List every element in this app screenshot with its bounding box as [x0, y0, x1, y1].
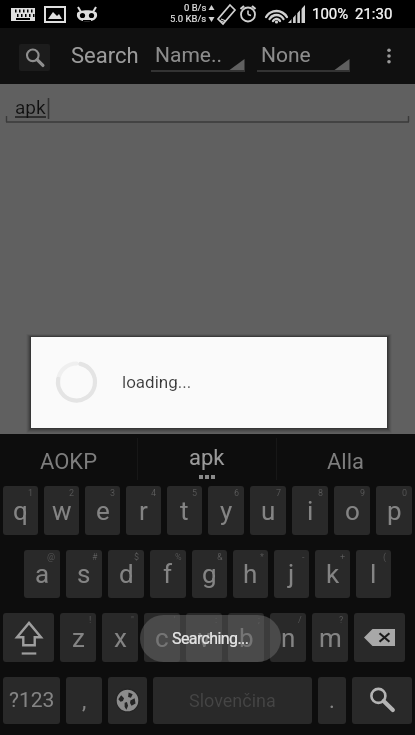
staticText: ?	[339, 615, 344, 626]
staticText: 2	[69, 488, 75, 499]
staticText: t	[180, 496, 189, 526]
staticText: i	[307, 496, 314, 526]
button[interactable]: z	[60, 613, 96, 662]
staticText: z	[72, 623, 85, 653]
staticText: 5	[192, 488, 198, 499]
staticText: 0 B/s	[184, 2, 207, 13]
staticText: loading...	[122, 372, 192, 392]
staticText: l	[370, 559, 377, 589]
staticText: b	[239, 623, 254, 653]
button[interactable]: More options	[369, 36, 409, 76]
button[interactable]: Search	[19, 44, 50, 71]
button[interactable]: Slovenčina	[153, 677, 312, 724]
button[interactable]: k	[315, 550, 350, 598]
button[interactable]: a	[24, 550, 60, 598]
staticText: @	[47, 552, 56, 563]
staticText: 4	[151, 488, 157, 499]
staticText: r	[139, 496, 148, 526]
staticText: *	[260, 552, 264, 563]
staticText: ,	[82, 688, 87, 714]
staticText: c	[155, 623, 169, 653]
staticText: !	[89, 615, 92, 626]
button[interactable]: x	[102, 613, 138, 662]
button[interactable]: m	[312, 613, 348, 662]
staticText: %	[175, 552, 182, 563]
staticText: -	[302, 552, 305, 563]
staticText: ?123	[9, 688, 55, 713]
button[interactable]: Delete	[354, 613, 405, 662]
staticText: g	[202, 559, 217, 589]
button[interactable]: w	[44, 486, 79, 535]
button[interactable]: AOKP	[0, 434, 137, 484]
button[interactable]: u	[250, 486, 286, 535]
button[interactable]: Change language	[108, 677, 147, 724]
staticText: o	[345, 496, 360, 526]
button[interactable]: .	[318, 677, 346, 724]
staticText: apk	[15, 96, 46, 118]
staticText: (	[383, 552, 387, 563]
button[interactable]: ?123	[3, 677, 60, 724]
staticText: e	[96, 496, 110, 526]
staticText: "	[131, 615, 134, 626]
staticText: 5.0 KB/s	[170, 13, 207, 24]
button[interactable]: s	[66, 550, 102, 598]
button[interactable]: Search	[352, 677, 412, 724]
staticText: .	[329, 688, 335, 714]
button[interactable]: f	[150, 550, 186, 598]
button[interactable]: p	[376, 486, 412, 535]
staticText: w	[52, 496, 72, 526]
button[interactable]: h	[233, 550, 268, 598]
staticText: 8	[318, 488, 324, 499]
button[interactable]: Shift	[3, 613, 54, 662]
staticText: None	[261, 43, 311, 68]
staticText: 6	[234, 488, 240, 499]
staticText: Alla	[327, 449, 365, 475]
staticText: apk	[189, 445, 225, 471]
button[interactable]: apk	[138, 434, 276, 484]
staticText: x	[114, 623, 127, 653]
staticText: +	[340, 552, 346, 563]
staticText: $	[134, 552, 140, 563]
staticText: #	[92, 552, 98, 563]
staticText: ;	[258, 615, 260, 626]
staticText: Search	[71, 43, 139, 69]
staticText: y	[220, 496, 233, 526]
staticText: /	[298, 615, 302, 626]
button[interactable]: j	[274, 550, 309, 598]
staticText: s	[77, 559, 91, 589]
staticText: j	[288, 559, 295, 589]
staticText: a	[35, 559, 50, 589]
button[interactable]: y	[208, 486, 244, 535]
staticText: Name..	[155, 43, 223, 68]
staticText: f	[163, 559, 173, 589]
staticText: v	[198, 623, 211, 653]
staticText: q	[13, 496, 28, 526]
button[interactable]: Name..	[151, 37, 245, 73]
staticText: m	[319, 623, 342, 653]
staticText: Slovenčina	[189, 690, 276, 711]
button[interactable]: q	[3, 486, 38, 535]
button[interactable]: o	[334, 486, 370, 535]
button[interactable]: Alla	[277, 434, 415, 484]
staticText: 21:30	[355, 5, 393, 23]
button[interactable]: l	[356, 550, 391, 598]
button[interactable]: c	[144, 613, 180, 662]
button[interactable]: b	[228, 613, 264, 662]
button[interactable]: n	[270, 613, 306, 662]
button[interactable]: r	[126, 486, 161, 535]
staticText: Searching...	[172, 629, 249, 648]
button[interactable]: g	[192, 550, 227, 598]
staticText: 100%	[312, 5, 349, 23]
button[interactable]: i	[292, 486, 328, 535]
staticText: p	[387, 496, 402, 526]
button[interactable]: ,	[66, 677, 102, 724]
button[interactable]: d	[108, 550, 144, 598]
button[interactable]: v	[186, 613, 222, 662]
button[interactable]: None	[257, 37, 350, 73]
button[interactable]: t	[167, 486, 202, 535]
staticText: d	[119, 559, 134, 589]
staticText: AOKP	[40, 449, 98, 475]
button[interactable]: e	[85, 486, 120, 535]
